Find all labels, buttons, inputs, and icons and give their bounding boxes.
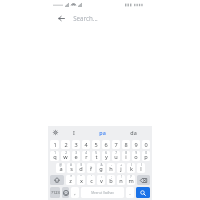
staticText: b xyxy=(109,177,113,185)
button[interactable]: 4 xyxy=(82,140,90,149)
button[interactable]: 7 xyxy=(112,151,120,161)
staticText: g xyxy=(99,165,103,173)
button[interactable]: 5 xyxy=(92,140,100,149)
staticText: Meerut Vadhav xyxy=(91,191,114,195)
staticText: r xyxy=(85,153,88,161)
staticText: @ xyxy=(59,163,62,167)
button[interactable]: 3 xyxy=(72,140,80,149)
button[interactable]: 3 xyxy=(72,151,80,161)
staticText: q xyxy=(53,153,57,161)
staticText: u xyxy=(114,153,118,161)
button[interactable]: . xyxy=(126,187,134,198)
button[interactable]: # xyxy=(67,163,75,173)
staticText: + xyxy=(120,163,122,167)
button[interactable]: Search xyxy=(136,187,150,198)
staticText: . xyxy=(129,189,131,197)
button[interactable]: 1 xyxy=(50,140,59,149)
button[interactable]: Keyboard settings xyxy=(51,128,60,137)
button[interactable]: 9 xyxy=(132,140,140,149)
button[interactable]: Emoji xyxy=(62,187,69,198)
staticText: 9 xyxy=(135,151,137,155)
staticText: 9 xyxy=(134,141,138,149)
button[interactable]: ? xyxy=(127,175,135,185)
button[interactable]: , xyxy=(71,187,79,198)
button[interactable]: $ xyxy=(77,163,85,173)
button[interactable]: ! xyxy=(117,175,125,185)
staticText: n xyxy=(119,177,123,185)
button[interactable]: - xyxy=(107,163,115,173)
button[interactable]: + xyxy=(117,163,125,173)
button[interactable]: ) xyxy=(137,163,145,173)
staticText: ( xyxy=(131,163,132,167)
staticText: ' xyxy=(91,175,92,179)
button[interactable]: Symbols xyxy=(50,187,60,198)
staticText: 3 xyxy=(74,141,78,149)
staticText: 2 xyxy=(64,141,68,149)
staticText: 2 xyxy=(65,151,67,155)
staticText: z xyxy=(69,177,72,185)
button[interactable]: 6 xyxy=(102,151,110,161)
staticText: ! xyxy=(121,175,122,179)
staticText: j xyxy=(120,165,122,173)
button[interactable]: Space xyxy=(81,187,124,198)
button[interactable]: 8 xyxy=(122,140,130,149)
staticText: c xyxy=(90,177,93,185)
staticText: y xyxy=(105,153,108,161)
button[interactable]: 0 xyxy=(142,151,150,161)
button[interactable]: " xyxy=(77,175,85,185)
button[interactable]: 2 xyxy=(61,140,70,149)
button[interactable]: Navigate up xyxy=(54,11,68,25)
button[interactable]: & xyxy=(97,163,105,173)
button[interactable]: pa xyxy=(87,126,118,139)
button[interactable]: I xyxy=(60,126,87,139)
button[interactable]: 0 xyxy=(142,140,150,149)
staticText: a xyxy=(59,165,63,173)
staticText: 5 xyxy=(94,141,98,149)
button[interactable]: Shift xyxy=(50,175,64,185)
button[interactable]: Search... xyxy=(73,9,148,27)
button[interactable]: 8 xyxy=(122,151,130,161)
staticText: o xyxy=(134,153,138,161)
staticText: f xyxy=(90,165,92,173)
staticText: m xyxy=(128,177,134,185)
staticText: ; xyxy=(111,175,112,179)
staticText: 1 xyxy=(54,151,56,155)
staticText: pa xyxy=(99,129,106,136)
staticText: # xyxy=(70,163,72,167)
staticText: 3 xyxy=(75,151,77,155)
staticText: e xyxy=(74,153,78,161)
staticText: 8 xyxy=(125,151,127,155)
staticText: h xyxy=(109,165,113,173)
staticText: * xyxy=(70,175,72,179)
button[interactable]: 7 xyxy=(112,140,120,149)
staticText: i xyxy=(125,153,127,161)
button[interactable]: 4 xyxy=(82,151,90,161)
button[interactable]: da xyxy=(118,126,149,139)
button[interactable]: 2 xyxy=(61,151,70,161)
button[interactable]: _ xyxy=(87,163,95,173)
staticText: 6 xyxy=(104,141,108,149)
staticText: Search... xyxy=(73,14,98,22)
staticText: , xyxy=(74,189,76,197)
button[interactable]: 6 xyxy=(102,140,110,149)
staticText: _ xyxy=(90,163,92,167)
staticText: 0 xyxy=(144,141,148,149)
staticText: x xyxy=(80,177,83,185)
button[interactable]: ; xyxy=(107,175,115,185)
staticText: & xyxy=(100,163,103,167)
button[interactable]: * xyxy=(66,175,75,185)
staticText: k xyxy=(130,165,133,173)
button[interactable]: Delete xyxy=(137,175,150,185)
button[interactable]: ( xyxy=(127,163,135,173)
button[interactable]: : xyxy=(97,175,105,185)
staticText: s xyxy=(70,165,73,173)
button[interactable]: 9 xyxy=(132,151,140,161)
staticText: 5 xyxy=(95,151,97,155)
staticText: 7 xyxy=(115,151,117,155)
button[interactable]: ' xyxy=(87,175,95,185)
staticText: - xyxy=(111,163,112,167)
button[interactable]: @ xyxy=(56,163,65,173)
button[interactable]: 1 xyxy=(50,151,59,161)
button[interactable]: 5 xyxy=(92,151,100,161)
staticText: 1 xyxy=(53,141,57,149)
